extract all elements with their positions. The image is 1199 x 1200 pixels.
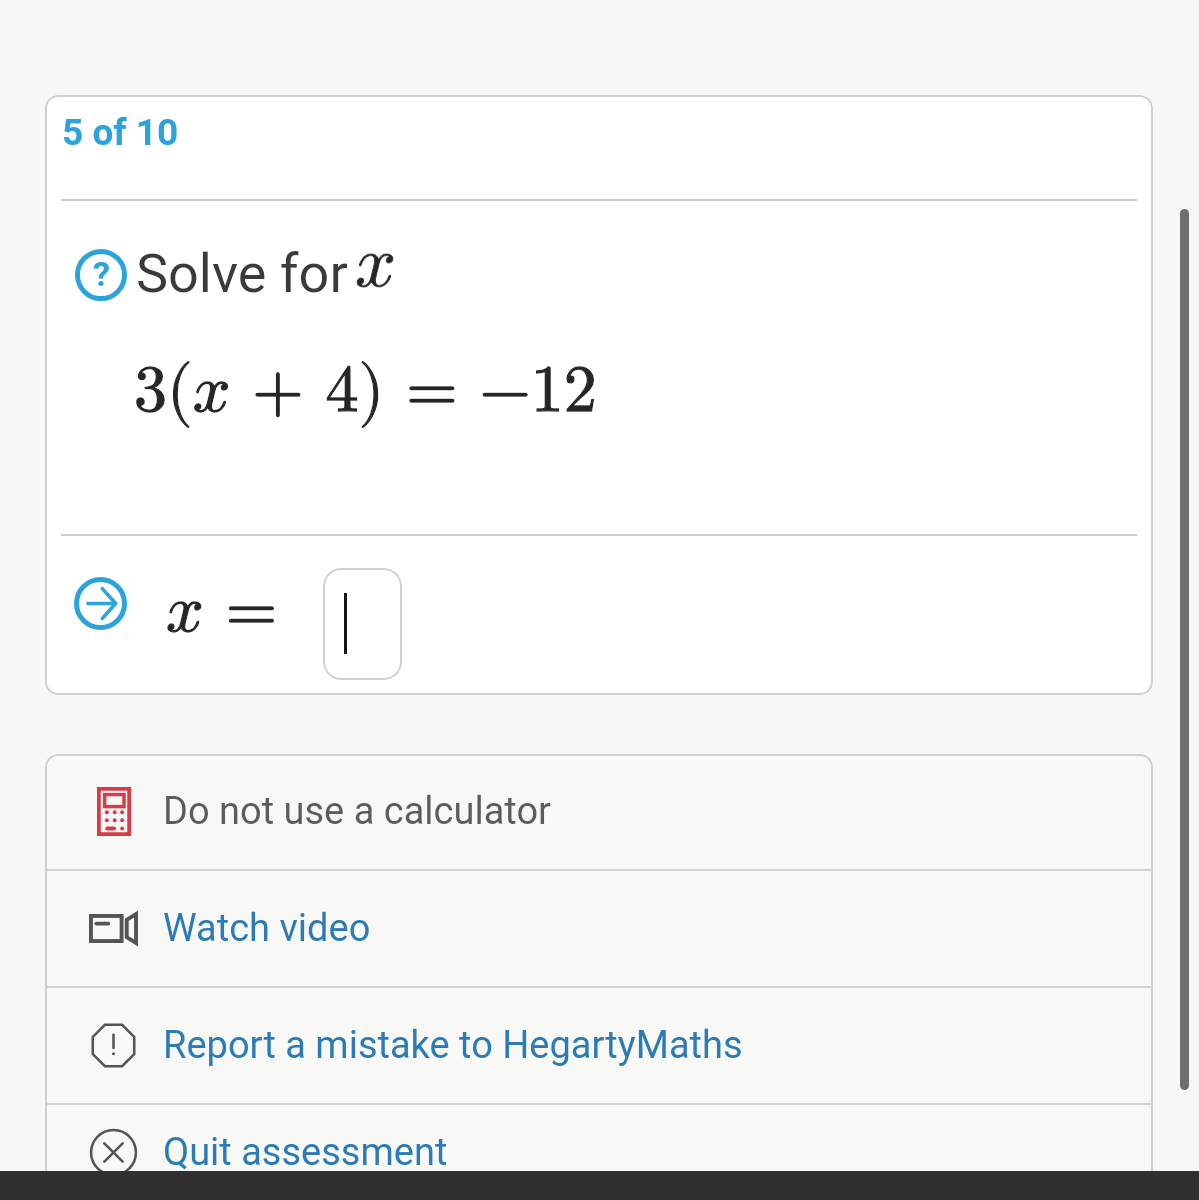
button[interactable]: Quit assessment <box>45 1105 1153 1200</box>
staticText: 3(𝑥 + 4) = −12 <box>134 358 597 424</box>
staticText: 3(𝑥 + 4) = −12 <box>134 358 597 424</box>
staticText: Do not use a calculator <box>163 789 551 834</box>
staticText: Solve for <box>136 242 348 305</box>
staticText: 𝑥 = <box>166 578 278 644</box>
staticText: 𝑥 = <box>166 578 278 644</box>
staticText: Report a mistake to HegartyMaths <box>163 1023 743 1068</box>
other: Question <box>75 249 127 301</box>
button[interactable]: Watch video <box>45 871 1153 986</box>
staticText: Watch video <box>163 906 371 951</box>
button[interactable]: Report a mistake to HegartyMaths <box>45 988 1153 1103</box>
button[interactable]: Do not use a calculator <box>45 754 1153 869</box>
staticText: ? <box>93 254 110 294</box>
button[interactable]: Answer input <box>323 568 402 680</box>
staticText: 𝑥 <box>355 228 397 300</box>
staticText: Quit assessment <box>163 1130 448 1175</box>
button[interactable]: Submit answer <box>74 577 127 630</box>
staticText: 𝑥 <box>355 228 397 300</box>
staticText: 5 of 10 <box>62 111 179 154</box>
